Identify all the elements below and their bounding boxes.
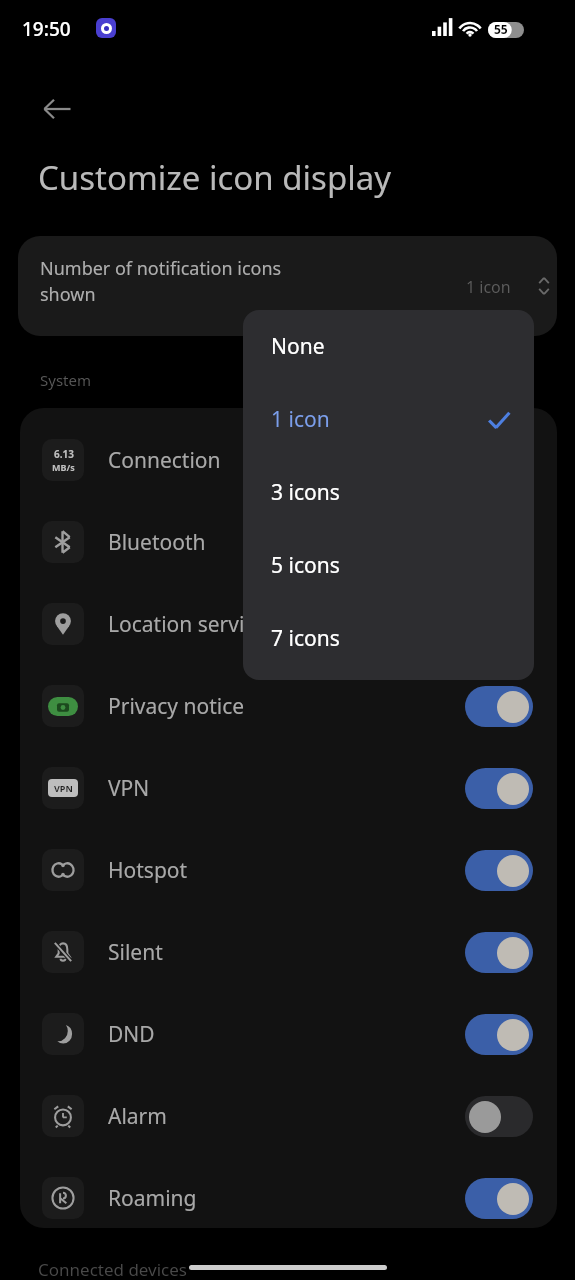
staticText: VPN [54,782,73,794]
button[interactable]: Roaming [20,1157,557,1228]
button[interactable] [465,1014,533,1055]
button[interactable]: 7 icons [243,602,534,675]
staticText: Number of notification icons shown [40,256,400,306]
button[interactable]: Bluetooth [20,501,557,583]
staticText: Connected devices [38,1258,188,1280]
button[interactable]: Alarm [20,1075,557,1157]
button[interactable]: Hotspot [20,829,557,911]
staticText: DND [108,1020,155,1049]
button[interactable]: Number of notification icons shown [18,236,557,336]
staticText: Bluetooth [108,528,206,557]
button[interactable]: Silent [20,911,557,993]
button[interactable]: Location services [20,583,557,665]
staticText: 7 icons [271,624,340,653]
button[interactable] [465,1178,533,1219]
button[interactable]: 3 icons [243,456,534,529]
button[interactable]: VPN [20,747,557,829]
staticText: Location services [108,610,277,639]
button[interactable] [465,686,533,727]
button[interactable] [465,768,533,809]
staticText: 19:50 [22,16,71,42]
staticText: Connection [108,446,221,475]
staticText: 1 icon [466,276,511,298]
staticText: Silent [108,938,163,967]
staticText: Hotspot [108,856,188,885]
button[interactable]: None [243,310,534,383]
staticText: System [40,370,91,390]
button[interactable] [465,932,533,973]
button[interactable]: 6.13 [20,419,557,501]
staticText: Customize icon display [38,155,392,200]
button[interactable]: DND [20,993,557,1075]
button[interactable] [465,850,533,891]
button[interactable]: Back [26,78,88,140]
staticText: None [271,332,325,361]
button[interactable]: 1 icon [243,383,534,456]
staticText: VPN [108,774,150,803]
staticText: 1 icon [271,405,330,434]
staticText: MB/s [52,461,75,473]
staticText: 6.13 [54,447,74,461]
staticText: 5 icons [271,551,340,580]
staticText: Privacy notice [108,692,245,721]
button[interactable] [465,1096,533,1137]
button[interactable]: 5 icons [243,529,534,602]
staticText: 55 [494,21,508,37]
staticText: 3 icons [271,478,340,507]
staticText: Alarm [108,1102,167,1131]
button[interactable]: Privacy notice [20,665,557,747]
staticText: Roaming [108,1184,197,1213]
